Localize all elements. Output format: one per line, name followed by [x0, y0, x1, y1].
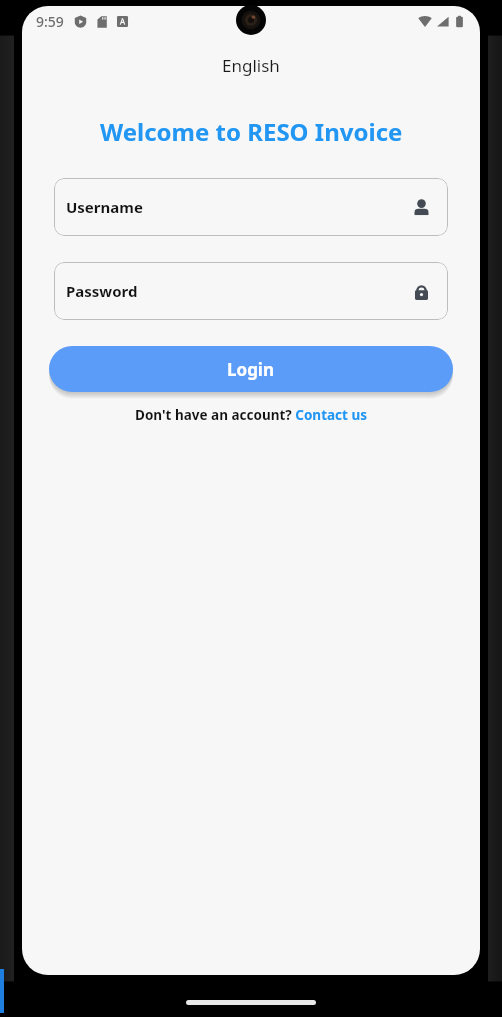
staticText: Don't have an account? Contact us	[135, 406, 367, 424]
staticText: 9:59	[36, 12, 64, 31]
staticText: Username	[66, 197, 411, 217]
button[interactable]: Login	[49, 346, 453, 392]
button[interactable]: Password	[54, 262, 448, 320]
staticText: Password	[66, 281, 411, 301]
button[interactable]: Don't have an account? Contact us	[135, 406, 367, 424]
staticText: Login	[227, 358, 275, 381]
staticText: English	[222, 54, 280, 77]
button[interactable]: English	[22, 54, 480, 77]
staticText: Welcome to RESO Invoice	[100, 115, 403, 148]
button[interactable]: Username	[54, 178, 448, 236]
